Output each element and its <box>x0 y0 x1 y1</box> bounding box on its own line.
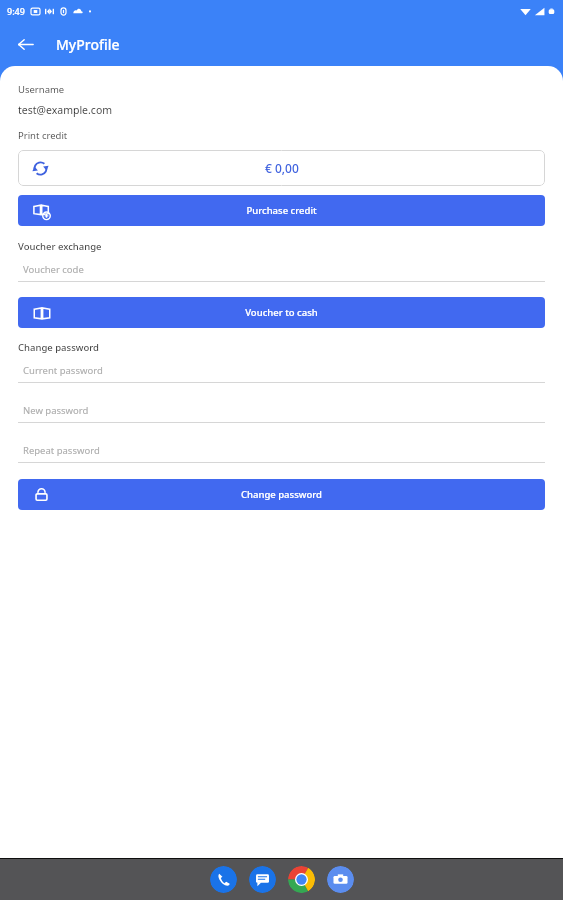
staticText: Change password <box>18 341 99 354</box>
button[interactable]: Repeat password <box>18 444 545 463</box>
staticText: 9:49 <box>7 5 25 17</box>
staticText: Voucher code <box>23 263 84 276</box>
other: Refresh credit <box>31 159 50 178</box>
button[interactable]: Refresh credit <box>18 150 545 186</box>
button[interactable]: Camera <box>327 866 354 893</box>
staticText: test@example.com <box>18 103 113 117</box>
button[interactable]: Voucher to cash <box>18 297 545 328</box>
button[interactable]: Messages <box>249 866 276 893</box>
staticText: Voucher to cash <box>245 306 318 319</box>
button[interactable]: Current password <box>18 364 545 383</box>
staticText: Print credit <box>18 129 68 142</box>
button[interactable]: Voucher code <box>18 263 545 282</box>
staticText: New password <box>23 404 89 417</box>
staticText: Repeat password <box>23 444 100 457</box>
staticText: Purchase credit <box>246 204 317 217</box>
staticText: Voucher exchange <box>18 240 102 253</box>
staticText: € 0,00 <box>265 160 299 176</box>
button[interactable]: Change password <box>18 479 545 510</box>
staticText: Current password <box>23 364 103 377</box>
staticText: Username <box>18 83 65 96</box>
button[interactable]: Back <box>9 28 41 60</box>
button[interactable]: New password <box>18 404 545 423</box>
button[interactable]: Phone <box>210 866 237 893</box>
staticText: Change password <box>241 488 322 501</box>
button[interactable]: Purchase credit <box>18 195 545 226</box>
button[interactable]: Chrome <box>288 866 315 893</box>
staticText: MyProfile <box>56 35 120 54</box>
